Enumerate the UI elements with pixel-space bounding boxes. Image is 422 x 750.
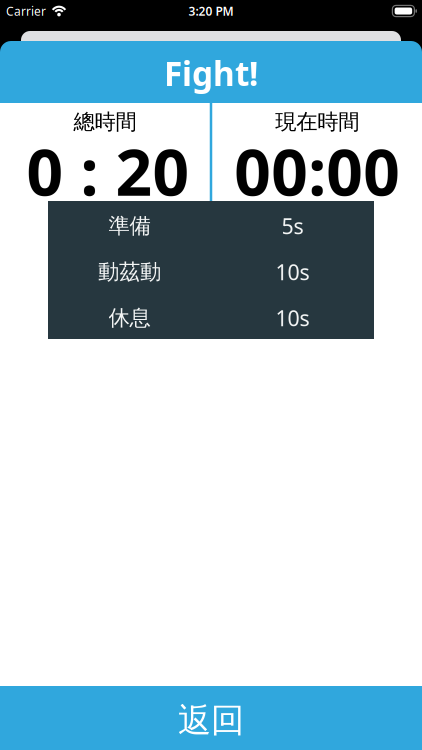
staticText: 現在時間 [275, 109, 359, 135]
staticText: 返回 [178, 700, 244, 741]
staticText: 00:00 [234, 128, 400, 213]
staticText: Fight! [164, 51, 258, 95]
button[interactable]: 返回 [0, 686, 422, 750]
staticText: 0 : 20 [26, 128, 189, 213]
staticText: Carrier [6, 3, 46, 19]
staticText: 準備 [108, 213, 150, 239]
staticText: 總時間 [73, 109, 136, 135]
staticText: 休息 [108, 305, 150, 331]
staticText: 5s [281, 212, 303, 240]
staticText: 10s [275, 304, 309, 332]
staticText: 動茲動 [98, 259, 161, 285]
staticText: 10s [275, 258, 309, 286]
staticText: 3:20 PM [188, 3, 233, 19]
